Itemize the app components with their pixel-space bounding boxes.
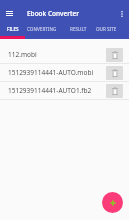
staticText: 1512939114441-AUTO1.fb2 xyxy=(8,86,106,95)
staticText: CONVERTING xyxy=(27,26,57,32)
button[interactable]: Delete xyxy=(106,84,123,98)
button[interactable]: Add file xyxy=(102,192,123,213)
button[interactable]: CONVERTING xyxy=(25,22,59,36)
staticText: FILES xyxy=(7,26,19,32)
button[interactable]: Open navigation menu xyxy=(0,5,19,22)
button[interactable]: Delete xyxy=(106,48,123,62)
button[interactable]: FILES xyxy=(0,22,25,36)
button[interactable]: RESULT xyxy=(63,22,93,36)
staticText: RESULT xyxy=(70,26,87,32)
button[interactable]: 1512939114441-AUTO1.fb2 xyxy=(0,82,129,99)
button[interactable]: Delete xyxy=(106,66,123,80)
staticText: 1512939114441-AUTO.mobi xyxy=(8,68,106,77)
staticText: OUR SITE xyxy=(96,26,117,32)
button[interactable]: 112.mobi xyxy=(0,46,129,63)
button[interactable]: 1512939114441-AUTO.mobi xyxy=(0,64,129,81)
staticText: 112.mobi xyxy=(8,50,106,59)
staticText: Ebook Converter xyxy=(27,9,114,18)
button[interactable]: More options xyxy=(114,5,129,22)
button[interactable]: OUR SITE xyxy=(91,22,121,36)
